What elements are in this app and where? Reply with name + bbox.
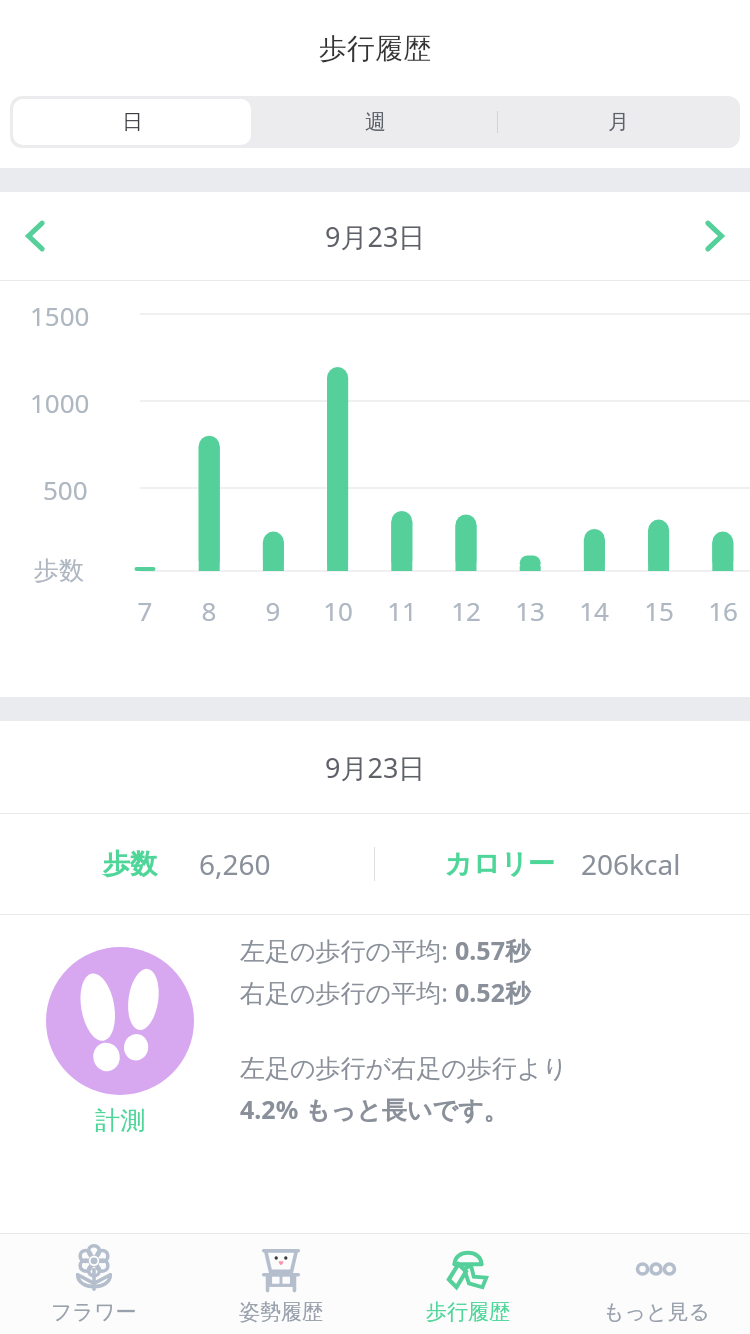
button[interactable]: 週 <box>254 96 497 148</box>
staticText: 500 <box>43 472 88 507</box>
staticText: 1000 <box>30 385 90 420</box>
staticText: 日 <box>122 109 143 135</box>
staticText: 歩数 <box>34 555 84 586</box>
staticText: 14 <box>574 593 614 628</box>
button[interactable]: フラワー <box>0 1234 187 1334</box>
staticText: 歩数 <box>103 847 157 881</box>
staticText: 16 <box>703 593 743 628</box>
button[interactable]: 姿勢履歴 <box>187 1234 374 1334</box>
button[interactable]: 歩行履歴 <box>374 1234 562 1334</box>
staticText: 左足の歩行が右足の歩行より <box>240 1053 568 1084</box>
button[interactable]: 次の日 <box>678 200 750 272</box>
staticText: 15 <box>639 593 679 628</box>
staticText: 8 <box>189 593 229 628</box>
staticText: もっと見る <box>603 1299 710 1325</box>
staticText: 6,260 <box>199 845 271 883</box>
staticText: 9月23日 <box>325 749 426 786</box>
staticText: 206kcal <box>581 845 681 883</box>
staticText: 10 <box>318 593 358 628</box>
staticText: 11 <box>382 593 422 628</box>
staticText: 12 <box>446 593 486 628</box>
staticText: 左足の歩行の平均: <box>240 933 455 967</box>
staticText: 計測 <box>95 1105 145 1136</box>
staticText: 9 <box>253 593 293 628</box>
staticText: 月 <box>608 109 629 135</box>
staticText: 歩行履歴 <box>319 31 431 66</box>
staticText: 歩行履歴 <box>426 1299 510 1325</box>
staticText: フラワー <box>51 1299 137 1325</box>
staticText: もっと長いです。 <box>305 1095 509 1126</box>
staticText: 4.2% <box>240 1092 305 1126</box>
staticText: 9月23日 <box>325 218 426 255</box>
button[interactable]: 日 <box>13 99 251 145</box>
staticText: 姿勢履歴 <box>239 1299 323 1325</box>
button[interactable]: 計測 <box>46 947 194 1095</box>
staticText: 週 <box>365 109 386 135</box>
staticText: 7 <box>125 593 165 628</box>
button[interactable]: 月 <box>497 96 740 148</box>
button[interactable]: もっと見る <box>562 1234 750 1334</box>
staticText: 0.52秒 <box>455 975 530 1009</box>
staticText: 右足の歩行の平均: <box>240 975 455 1009</box>
staticText: 0.57秒 <box>455 933 530 967</box>
staticText: 1500 <box>30 298 90 333</box>
staticText: 13 <box>510 593 550 628</box>
button[interactable]: 前の日 <box>0 200 72 272</box>
staticText: カロリー <box>445 847 555 881</box>
